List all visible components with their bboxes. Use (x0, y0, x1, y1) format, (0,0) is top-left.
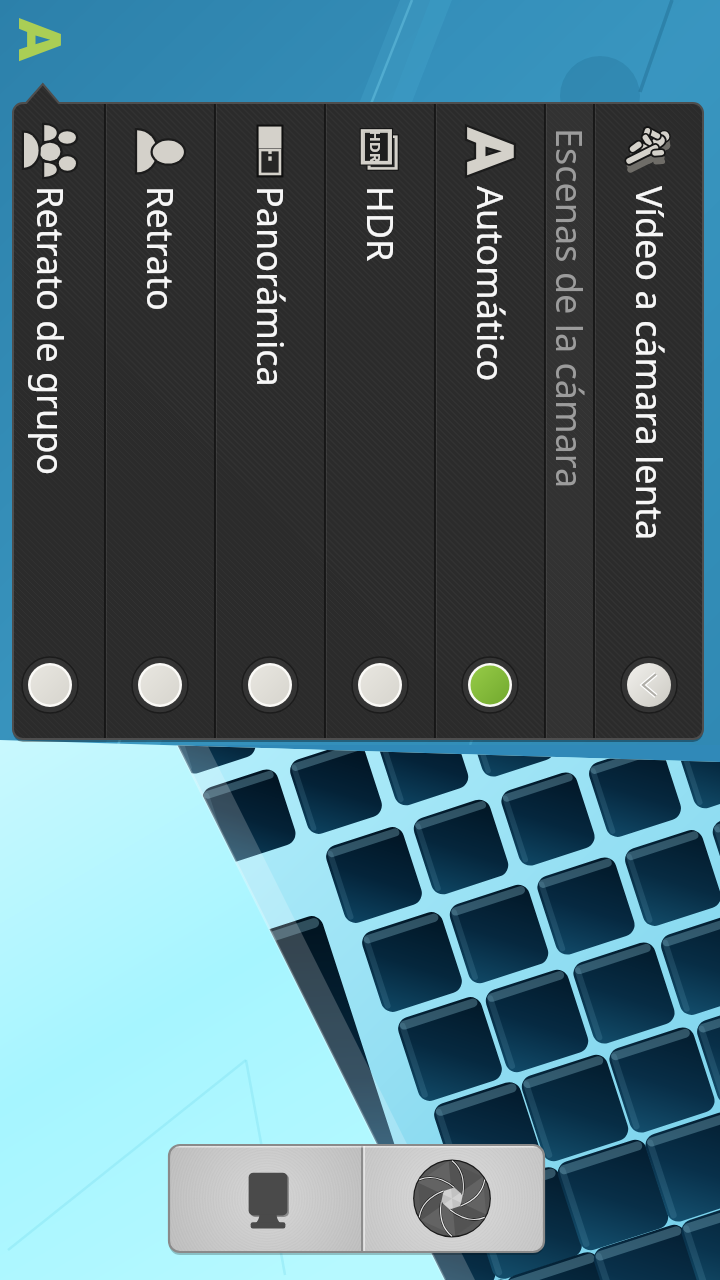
button[interactable]: Retrato (105, 103, 215, 739)
button[interactable]: Automático (435, 103, 545, 739)
button[interactable]: Vídeo a cámara lenta (594, 103, 704, 739)
button[interactable]: Video camera (173, 1148, 358, 1251)
button[interactable]: Automatic mode (14, 14, 62, 62)
button[interactable]: Panorámica (215, 103, 325, 739)
button[interactable]: Escenas de la cámara (545, 103, 594, 739)
button[interactable]: HDR (325, 103, 435, 739)
button[interactable]: Retrato de grupo (13, 103, 105, 739)
button[interactable]: Shutter (358, 1148, 545, 1251)
